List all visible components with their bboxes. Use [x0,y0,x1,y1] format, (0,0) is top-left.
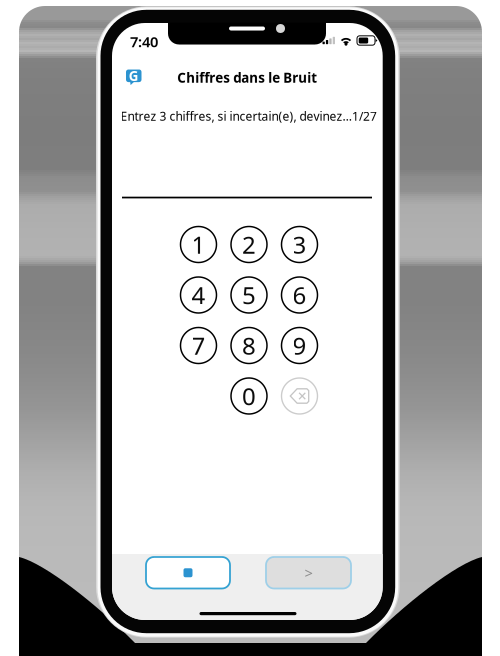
button[interactable]: 7 [173,320,223,370]
staticText: 4 [191,279,205,311]
staticText: 7:40 [130,32,158,51]
staticText: > [304,563,312,582]
staticText: 1/27 [352,108,377,124]
staticText: 0 [242,380,256,412]
staticText: 6 [292,279,306,311]
staticText: 3 [292,229,306,260]
button[interactable]: 6 [274,270,324,320]
button[interactable]: 0 [224,371,274,421]
staticText: Entrez 3 chiffres, si incertain(e), devi… [120,108,351,124]
staticText: 8 [242,330,256,361]
button[interactable]: Next [266,557,351,588]
button[interactable]: Delete [274,371,324,421]
button[interactable]: 8 [224,320,274,370]
staticText: G [129,67,139,85]
staticText: 1 [191,229,205,260]
staticText: 5 [242,279,256,311]
staticText: 2 [242,229,256,260]
button[interactable]: Record [146,557,230,588]
staticText: Chiffres dans le Bruit [177,69,317,86]
button[interactable]: 3 [274,219,324,269]
staticText: 9 [292,330,306,361]
button[interactable]: 5 [224,270,274,320]
button[interactable]: 4 [173,270,223,320]
button[interactable]: 2 [224,219,274,269]
button[interactable]: 9 [274,320,324,370]
staticText: 7 [191,330,205,361]
button[interactable]: 1 [173,219,223,269]
